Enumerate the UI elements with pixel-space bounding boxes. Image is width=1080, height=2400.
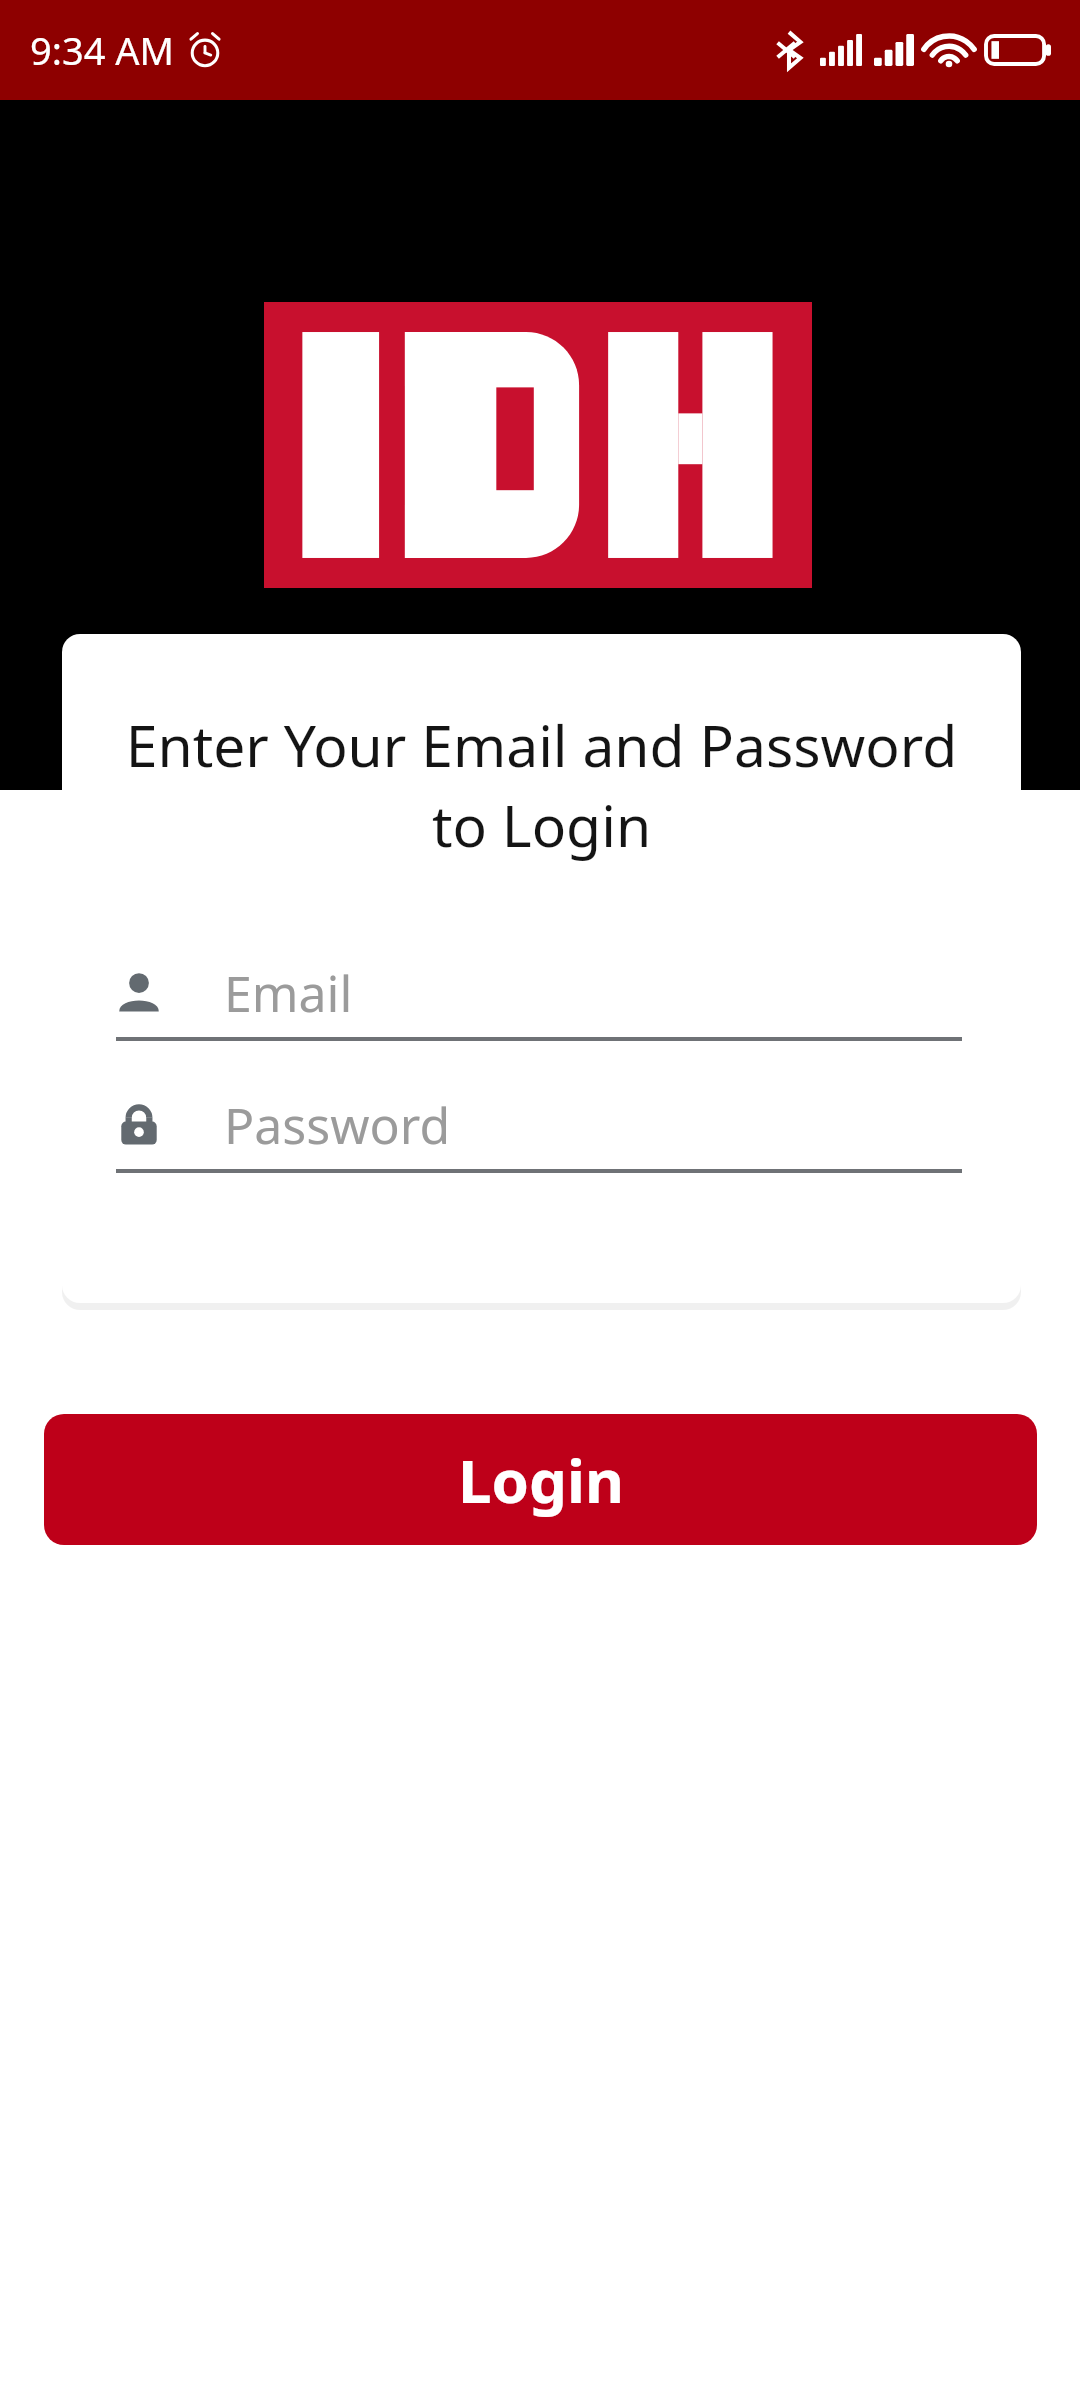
other: Password bbox=[116, 1102, 162, 1148]
other: Email bbox=[116, 970, 162, 1016]
button[interactable]: Password bbox=[116, 1081, 962, 1173]
staticText: 9:34 AM bbox=[30, 24, 175, 76]
button[interactable]: Email bbox=[116, 949, 962, 1041]
staticText: Email bbox=[224, 959, 353, 1027]
staticText: Password bbox=[224, 1091, 451, 1159]
button[interactable]: Login bbox=[44, 1414, 1037, 1545]
staticText: Enter Your Email and Password to Login bbox=[96, 706, 987, 863]
staticText: Login bbox=[458, 1439, 624, 1521]
